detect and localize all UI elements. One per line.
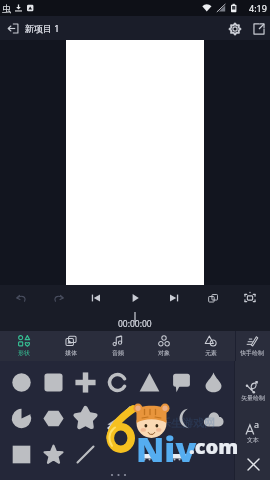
button[interactable]: Shape 3 (69, 366, 101, 398)
button[interactable]: 矢量绘制 (235, 380, 270, 402)
button[interactable]: 音频 (97, 331, 139, 361)
button[interactable]: Shape 12 (133, 402, 165, 434)
button[interactable]: Fit to screen (240, 288, 260, 308)
staticText: 元素 (205, 349, 217, 357)
staticText: 乐生游戏网 (160, 416, 215, 430)
button[interactable]: Back (2, 17, 24, 39)
button[interactable]: Duplicate (203, 288, 223, 308)
button[interactable]: 文本 (235, 422, 270, 444)
button[interactable]: Play (125, 288, 145, 308)
staticText: 音频 (112, 349, 124, 357)
button[interactable]: 对象 (143, 331, 185, 361)
button[interactable]: 快手绘制 (231, 331, 270, 361)
staticText: 新项目 1 (25, 22, 60, 34)
button[interactable]: Skip to end (164, 288, 184, 308)
button[interactable]: Shape 9 (37, 402, 69, 434)
button[interactable]: Shape 11 (101, 402, 133, 434)
button[interactable]: Shape 7 (197, 366, 229, 398)
button[interactable]: Shape 13 (165, 402, 197, 434)
button[interactable]: Settings (223, 17, 246, 40)
button[interactable]: 元素 (190, 331, 232, 361)
staticText: 4:19 (249, 2, 267, 14)
button[interactable]: Redo (48, 288, 68, 308)
button[interactable]: Shape 1 (5, 366, 37, 398)
staticText: 对象 (158, 349, 170, 357)
button[interactable]: Shape 8 (5, 402, 37, 434)
staticText: Niv (136, 426, 197, 472)
button[interactable]: Skip to start (86, 288, 106, 308)
button[interactable]: Shape 10 (69, 402, 101, 434)
button[interactable]: Close (242, 453, 264, 475)
button[interactable]: 形状 (3, 331, 45, 361)
button[interactable]: Shape 2 (37, 366, 69, 398)
button[interactable]: Shape 15 (5, 438, 37, 470)
staticText: .com (189, 433, 239, 460)
button[interactable]: Shape 17 (69, 438, 101, 470)
staticText: 文本 (247, 436, 259, 444)
button[interactable]: Export (247, 17, 270, 40)
button[interactable]: 媒体 (50, 331, 92, 361)
button[interactable]: Undo (11, 288, 31, 308)
staticText: a (254, 418, 260, 430)
staticText: 矢量绘制 (241, 394, 265, 402)
staticText: 00:00:00 (118, 318, 152, 330)
button[interactable]: Shape 6 (165, 366, 197, 398)
staticText: 虫 (2, 3, 11, 14)
button[interactable]: Shape 14 (197, 402, 229, 434)
button[interactable]: Shape 5 (133, 366, 165, 398)
button[interactable]: Shape 4 (101, 366, 133, 398)
button[interactable]: Shape 16 (37, 438, 69, 470)
staticText: 快手绘制 (240, 349, 264, 357)
staticText: 形状 (18, 349, 30, 357)
staticText: 媒体 (65, 349, 77, 357)
